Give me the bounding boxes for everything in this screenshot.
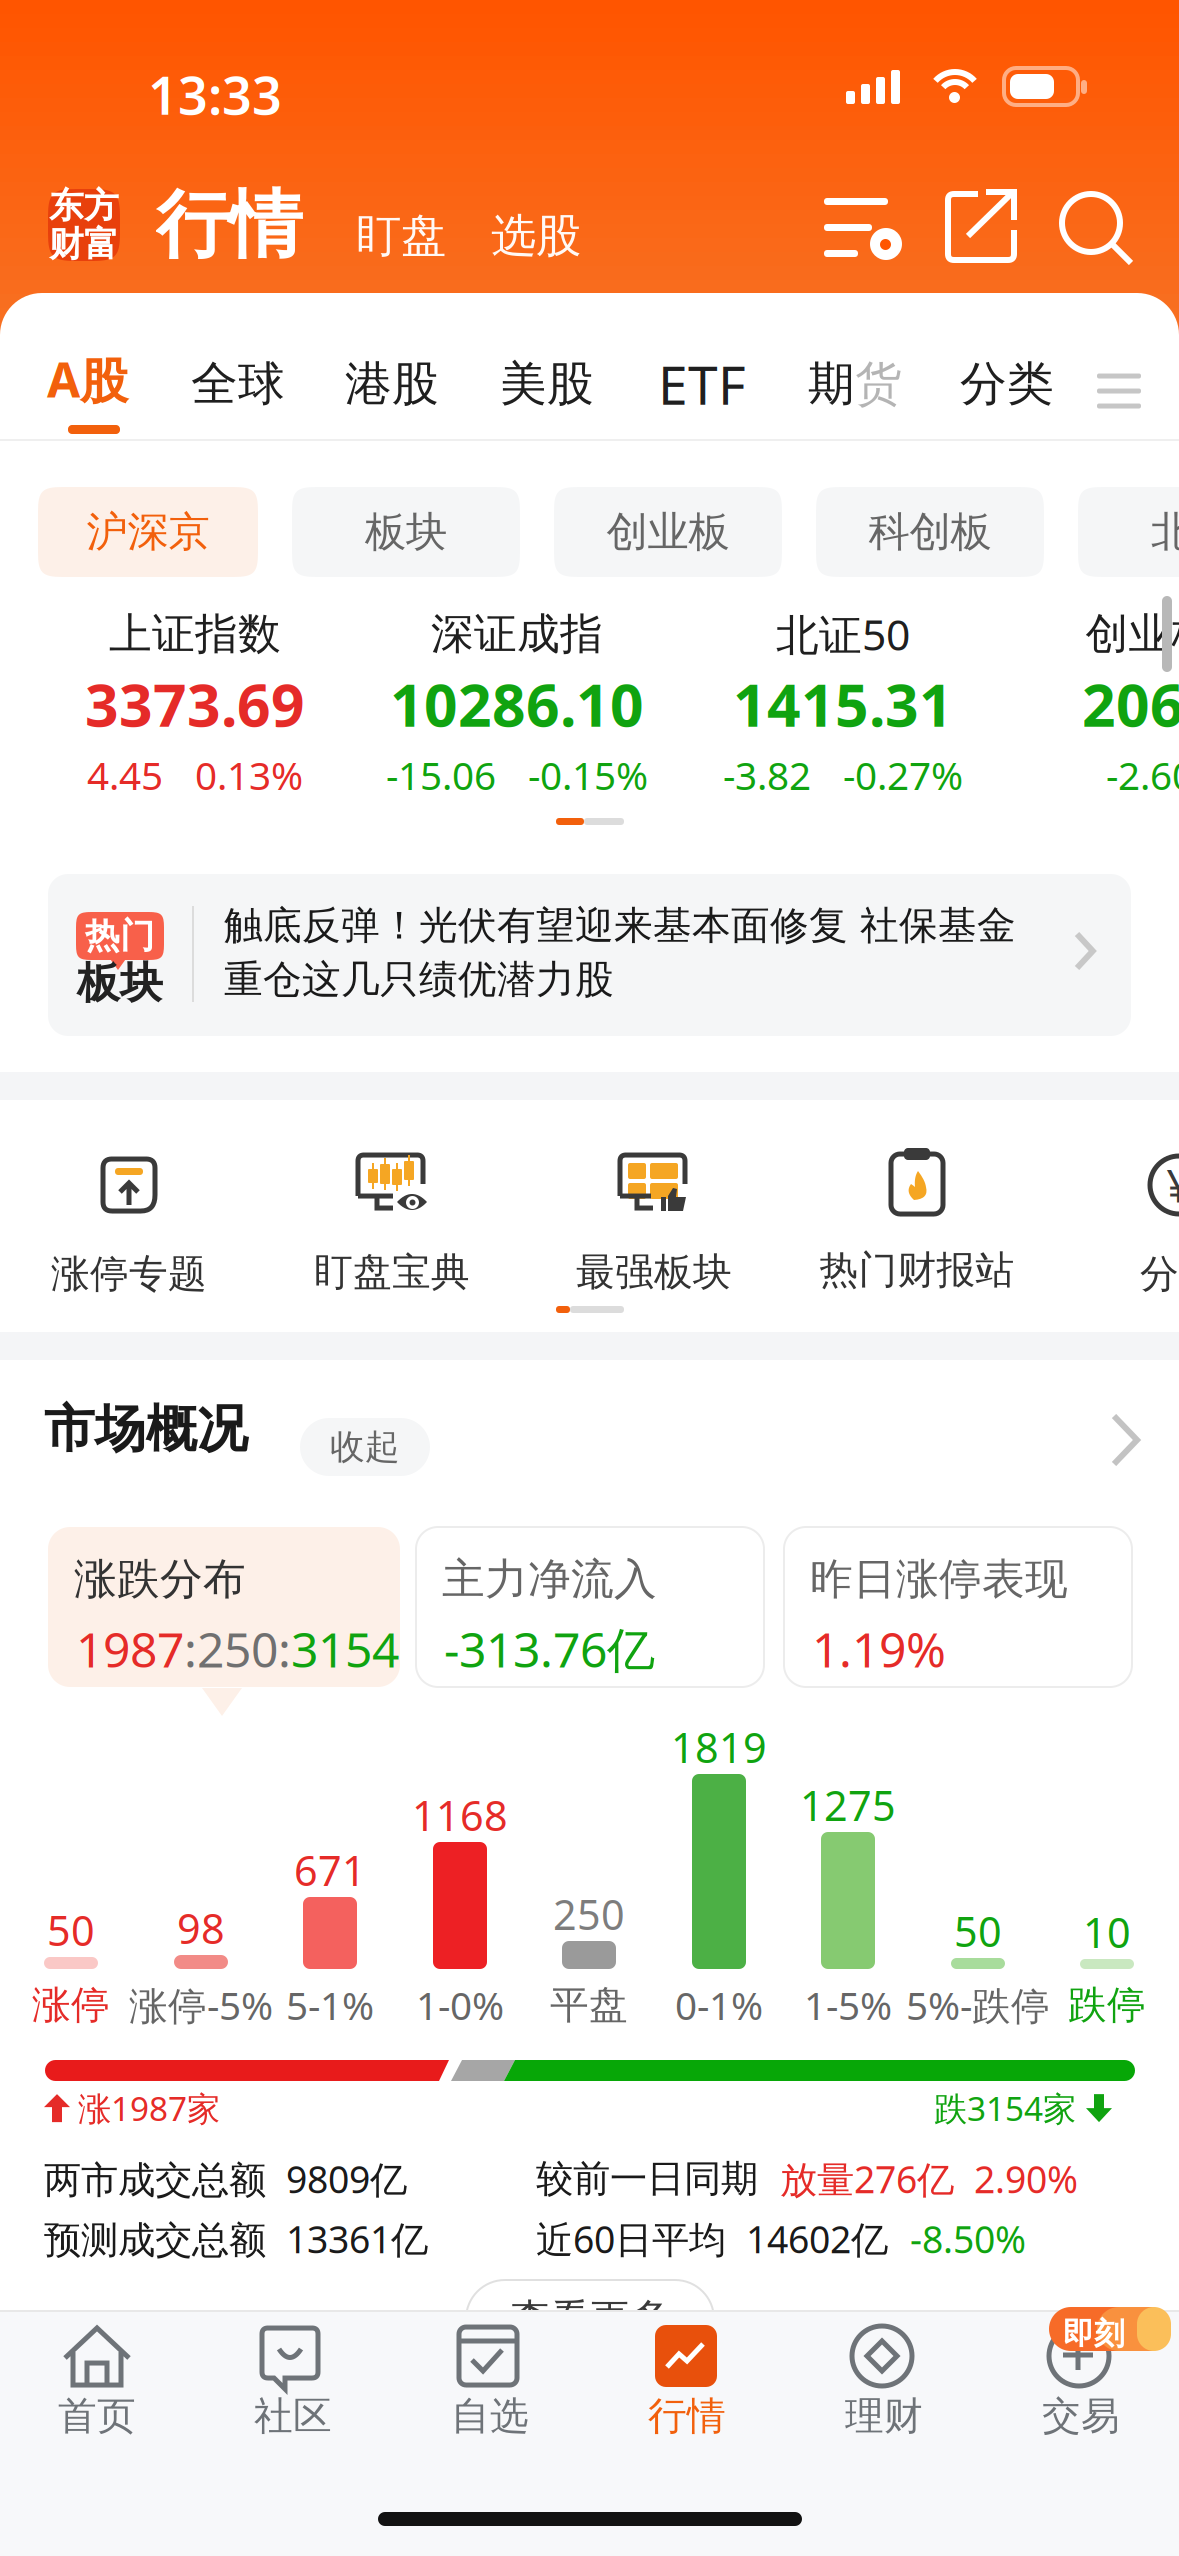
button[interactable]: 北交	[1078, 487, 1179, 577]
staticText: 涨停	[32, 1981, 110, 2029]
staticText: 理财	[845, 2392, 923, 2440]
staticText: 最强板块	[576, 1248, 732, 1296]
button[interactable]: 交易	[0, 0, 1179, 2556]
button[interactable]: 热门财报站	[0, 1148, 1179, 1312]
button[interactable]: 首页	[0, 0, 1179, 2556]
button[interactable]: 创业板	[554, 487, 782, 577]
staticText: 3154	[291, 1617, 399, 1681]
staticText: 热门	[85, 915, 155, 957]
button[interactable]: 社区	[0, 0, 1179, 2556]
staticText: 5%-跌停	[906, 1979, 1050, 2031]
staticText: 创业板	[606, 507, 729, 557]
staticText: ETF	[658, 349, 746, 419]
button[interactable]: 收起	[300, 1418, 430, 1476]
staticText: 13:33	[148, 60, 282, 129]
staticText: 东方	[49, 184, 119, 227]
button[interactable]: 港股	[345, 349, 439, 419]
button[interactable]: 上证指数	[22, 608, 368, 808]
staticText: 查看更多	[510, 2294, 670, 2343]
staticText: 行情	[156, 180, 302, 270]
staticText: 沪深京	[86, 507, 209, 557]
button[interactable]: 涨跌分布	[48, 1527, 400, 1687]
staticText: 上证指数	[109, 608, 281, 660]
staticText: 北证50	[776, 606, 910, 662]
staticText: ¥	[1166, 1155, 1179, 1215]
button[interactable]: 盯盘宝典	[0, 1150, 1179, 1314]
staticText: 1275	[800, 1778, 896, 1832]
staticText: 1168	[412, 1788, 508, 1842]
staticText: 跌停	[1068, 1981, 1146, 2029]
button[interactable]: 美股	[500, 349, 594, 419]
button[interactable]: 自选	[0, 0, 1179, 2556]
button[interactable]: 主力净流入	[416, 1527, 764, 1687]
staticText: 期	[808, 355, 855, 413]
button[interactable]: 全球	[191, 349, 285, 419]
button[interactable]: 理财	[0, 0, 1179, 2556]
staticText: 跌3154家	[934, 2086, 1076, 2130]
button[interactable]: 科创板	[816, 487, 1044, 577]
staticText: 社区	[254, 2392, 332, 2440]
button[interactable]: 选股	[491, 208, 579, 264]
staticText: 1415.31	[733, 665, 953, 743]
staticText: 涨停专题	[51, 1250, 207, 1298]
staticText: 昨日涨停表现	[810, 1553, 1068, 1605]
button[interactable]: 沪深京	[38, 487, 258, 577]
staticText: 671	[294, 1843, 366, 1897]
staticText: 1-0%	[416, 1979, 504, 2031]
staticText: 1987	[76, 1617, 184, 1681]
staticText: 板块	[77, 957, 163, 1009]
staticText: 交易	[1042, 2392, 1120, 2440]
staticText: -313.76亿	[444, 1617, 655, 1681]
button[interactable]: Share	[942, 188, 1024, 270]
button[interactable]: List settings	[824, 194, 908, 266]
button[interactable]: ¥	[0, 1152, 1179, 1316]
staticText: 1819	[671, 1720, 767, 1774]
staticText: 98	[177, 1901, 225, 1955]
button[interactable]: 涨停专题	[0, 1152, 1179, 1316]
staticText: 分类	[960, 355, 1054, 413]
staticText: 近60日平均 14602亿	[536, 2214, 910, 2264]
button[interactable]: 最强板块	[0, 1150, 1179, 1314]
button[interactable]: 行情	[0, 0, 1179, 2556]
button[interactable]: 昨日涨停表现	[784, 1527, 1132, 1687]
button[interactable]: 板块	[292, 487, 520, 577]
staticText: 热门财报站	[819, 1246, 1014, 1294]
button[interactable]: 盯盘	[356, 208, 444, 264]
button[interactable]: Expand	[1112, 1414, 1139, 1466]
staticText: -0.15%	[528, 749, 648, 801]
staticText: 预测成交总额 13361亿	[44, 2214, 428, 2264]
staticText: 10	[1083, 1905, 1131, 1959]
staticText: 货	[855, 355, 902, 413]
button[interactable]: 创业板	[1000, 608, 1179, 808]
staticText: 全球	[191, 355, 285, 413]
staticText: 2062	[1082, 665, 1179, 743]
button[interactable]: Search	[1060, 188, 1140, 270]
staticText: 涨跌分布	[74, 1553, 246, 1605]
staticText: 5-1%	[286, 1979, 374, 2031]
staticText: 4.45	[87, 749, 163, 801]
staticText: 50	[47, 1903, 95, 1957]
button[interactable]: ETF	[658, 349, 746, 419]
staticText: 科创板	[868, 507, 991, 557]
staticText: 首页	[58, 2392, 136, 2440]
staticText: 盯盘宝典	[314, 1248, 470, 1296]
staticText: 创业板	[1085, 608, 1179, 660]
staticText: -0.27%	[843, 749, 963, 801]
staticText: -2.60	[1106, 749, 1179, 801]
staticText: 涨1987家	[78, 2086, 220, 2130]
staticText: -3.82	[723, 749, 811, 801]
button[interactable]: All categories	[1088, 362, 1150, 420]
button[interactable]: 期	[808, 349, 902, 419]
staticText: A股	[47, 347, 128, 411]
staticText: 美股	[500, 355, 594, 413]
button[interactable]: 北证50	[696, 608, 990, 808]
button[interactable]: A股	[47, 344, 128, 414]
staticText: 平盘	[550, 1981, 628, 2029]
button[interactable]: 热门	[48, 874, 1131, 1036]
button[interactable]: 分类	[960, 349, 1054, 419]
staticText: 0.13%	[195, 749, 303, 801]
button[interactable]: 查看更多	[466, 2280, 714, 2358]
staticText: 50	[954, 1904, 1002, 1958]
button[interactable]: 深证成指	[344, 608, 690, 808]
staticText: 重仓这几只绩优潜力股	[224, 956, 614, 1003]
